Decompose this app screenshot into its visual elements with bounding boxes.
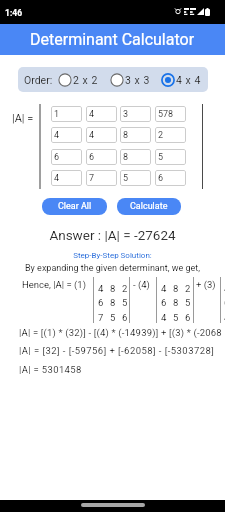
staticText: 2 x 2	[73, 74, 98, 86]
button[interactable]: 6	[155, 170, 186, 186]
staticText: 5	[158, 152, 164, 163]
staticText: 6	[54, 152, 60, 163]
button[interactable]: 4	[86, 106, 117, 122]
staticText: |A| = [(1) * (32)] - [(4) * (-14939)] + …	[19, 327, 222, 338]
staticText: 8	[123, 152, 129, 163]
staticText: 4	[54, 130, 60, 141]
button[interactable]: 8	[120, 149, 151, 165]
button[interactable]: 5	[155, 149, 186, 165]
staticText: 1:46	[5, 8, 23, 18]
staticText: Calculate	[130, 201, 168, 212]
staticText: 4	[161, 283, 167, 294]
staticText: - (4)	[133, 279, 150, 290]
staticText: Step-By-Step Solution:	[0, 251, 225, 260]
staticText: 5	[173, 312, 179, 323]
staticText: Clear All	[58, 201, 92, 212]
staticText: Determinant Calculator	[30, 30, 195, 49]
staticText: 4	[224, 283, 225, 294]
staticText: 6	[224, 297, 225, 308]
staticText: 4	[98, 283, 104, 294]
button[interactable]: Calculate	[117, 198, 181, 215]
staticText: 2	[185, 283, 191, 294]
staticText: 3	[123, 109, 129, 120]
staticText: By expanding the given determinant, we g…	[0, 263, 225, 274]
staticText: 6	[185, 312, 191, 323]
button[interactable]: 4	[86, 127, 117, 143]
staticText: 2	[158, 130, 164, 141]
staticText: 6	[158, 173, 164, 184]
button[interactable]: 4	[51, 127, 82, 143]
staticText: + (3)	[196, 279, 216, 290]
staticText: 7	[89, 173, 95, 184]
button[interactable]: 578	[155, 106, 186, 122]
button[interactable]: 4	[51, 170, 82, 186]
staticText: 8	[123, 130, 129, 141]
button[interactable]: 7	[86, 170, 117, 186]
staticText: 4	[54, 173, 60, 184]
staticText: |A| = 5301458	[19, 364, 82, 375]
staticText: 8	[173, 297, 179, 308]
staticText: 4 x 4	[176, 74, 201, 86]
staticText: Order:	[24, 74, 53, 86]
button[interactable]: 2	[155, 127, 186, 143]
staticText: 6	[122, 312, 128, 323]
button[interactable]: 3	[120, 106, 151, 122]
staticText: Answer : |A| = -27624	[0, 227, 225, 243]
staticText: 4	[89, 109, 95, 120]
staticText: |A| =	[12, 112, 34, 125]
staticText: 7	[98, 312, 104, 323]
staticText: 3 x 3	[125, 74, 150, 86]
staticText: 8	[173, 283, 179, 294]
staticText: 1	[54, 109, 60, 120]
staticText: 5	[110, 312, 116, 323]
button[interactable]: 4 x 4	[160, 67, 201, 92]
staticText: 5	[185, 297, 191, 308]
staticText: Hence, |A| = (1)	[22, 279, 86, 290]
staticText: 4	[161, 312, 167, 323]
staticText: |A| = [32] - [-59756] + [-62058] - [-530…	[19, 345, 215, 356]
staticText: 6	[89, 152, 95, 163]
button[interactable]: 8	[120, 127, 151, 143]
staticText: 578	[158, 109, 174, 120]
staticText: 8	[110, 283, 116, 294]
button[interactable]: 3 x 3	[109, 67, 150, 92]
button[interactable]: 1	[51, 106, 82, 122]
staticText: 2	[122, 283, 128, 294]
button[interactable]: 2 x 2	[57, 67, 98, 92]
button[interactable]: 6	[51, 149, 82, 165]
button[interactable]: Clear All	[42, 198, 107, 215]
staticText: 6	[161, 297, 167, 308]
button[interactable]: 5	[120, 170, 151, 186]
staticText: 4	[224, 312, 225, 323]
staticText: 8	[110, 297, 116, 308]
staticText: 5	[122, 297, 128, 308]
staticText: 6	[98, 297, 104, 308]
staticText: 5	[123, 173, 129, 184]
staticText: 4	[89, 130, 95, 141]
button[interactable]: 6	[86, 149, 117, 165]
